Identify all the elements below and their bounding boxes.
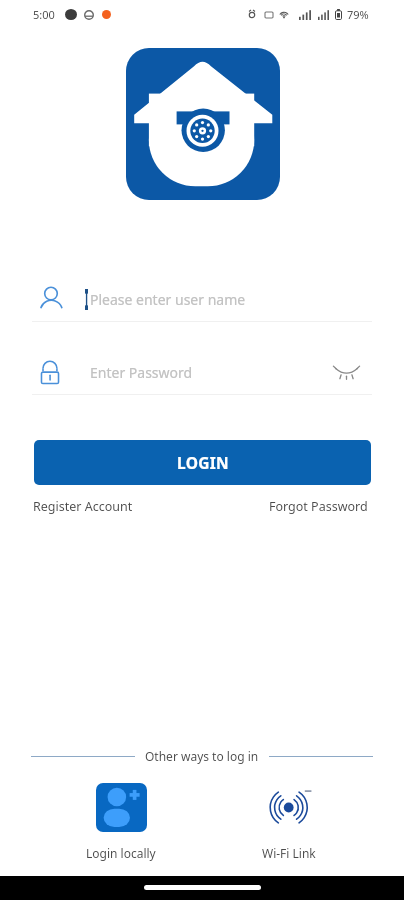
staticText: Wi-Fi Link <box>262 845 316 861</box>
staticText: Register Account <box>33 498 133 515</box>
button[interactable]: Register Account <box>27 494 139 519</box>
button[interactable]: Forgot Password <box>263 494 374 519</box>
button[interactable]: LOGIN <box>34 440 371 485</box>
staticText: Enter Password <box>90 363 193 382</box>
staticText: 5:00 <box>33 7 55 22</box>
staticText: LOGIN <box>177 452 229 473</box>
staticText: Please enter user name <box>90 290 246 309</box>
staticText: Forgot Password <box>269 498 368 515</box>
staticText: Other ways to log in <box>145 748 259 764</box>
button[interactable]: Login locally <box>61 783 181 861</box>
staticText: 79% <box>347 7 369 22</box>
button[interactable]: Wi-Fi Link <box>229 783 349 861</box>
button[interactable]: Show password <box>326 352 366 392</box>
staticText: Login locally <box>86 845 156 861</box>
